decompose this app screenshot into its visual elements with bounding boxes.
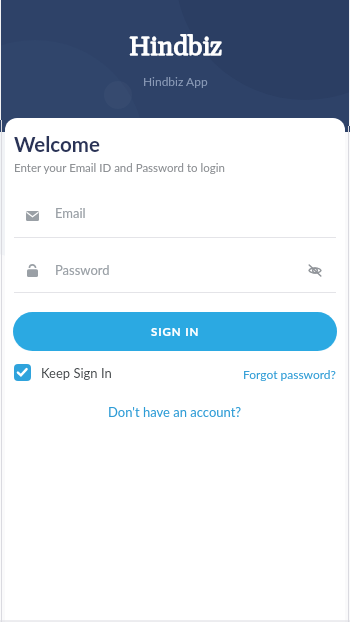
staticText: Email bbox=[55, 205, 86, 221]
button[interactable]: Password bbox=[5, 255, 345, 285]
button[interactable]: SIGN IN bbox=[13, 312, 337, 351]
staticText: Hindbiz App bbox=[143, 74, 208, 88]
button[interactable]: Email bbox=[5, 198, 345, 228]
staticText: Don't have an account? bbox=[108, 404, 242, 420]
button[interactable]: Keep Sign In bbox=[14, 364, 112, 381]
staticText: Welcome bbox=[14, 132, 100, 157]
button[interactable] bbox=[308, 264, 322, 277]
staticText: Enter your Email ID and Password to logi… bbox=[14, 161, 225, 175]
button[interactable]: Don't have an account? bbox=[5, 401, 345, 423]
staticText: Password bbox=[55, 262, 110, 278]
staticText: SIGN IN bbox=[151, 325, 200, 339]
button[interactable]: Forgot password? bbox=[243, 367, 336, 381]
staticText: Keep Sign In bbox=[41, 365, 112, 381]
staticText: Hindbiz bbox=[129, 31, 222, 64]
